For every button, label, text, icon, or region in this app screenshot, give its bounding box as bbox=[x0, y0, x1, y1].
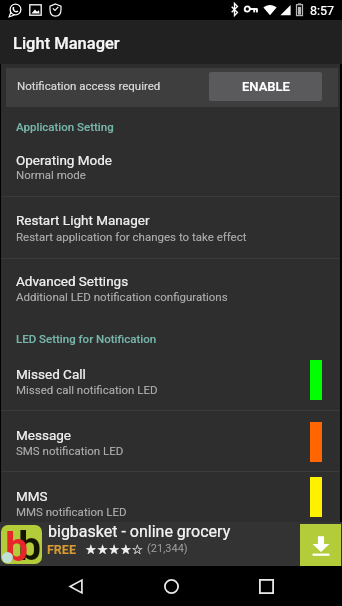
staticText: b bbox=[5, 523, 29, 562]
staticText: Light Manager bbox=[13, 34, 120, 53]
staticText: Additional LED notification configuratio… bbox=[16, 290, 228, 303]
button[interactable]: Home bbox=[141, 566, 202, 606]
staticText: Restart application for changes to take … bbox=[16, 230, 247, 243]
staticText: Notification access required bbox=[17, 79, 161, 92]
staticText: Operating Mode bbox=[16, 152, 113, 168]
staticText: (21,344) bbox=[147, 542, 188, 555]
button[interactable]: Install bbox=[300, 524, 341, 566]
button[interactable] bbox=[1, 411, 340, 471]
staticText: MMS bbox=[16, 488, 48, 504]
button[interactable]: b bbox=[0, 522, 342, 566]
staticText: Missed call notification LED bbox=[16, 383, 158, 396]
button[interactable] bbox=[1, 259, 340, 320]
button[interactable]: Notification access required bbox=[6, 68, 338, 107]
staticText: MMS notification LED bbox=[16, 505, 127, 518]
staticText: Restart Light Manager bbox=[16, 212, 150, 228]
button[interactable]: ENABLE bbox=[209, 72, 322, 101]
staticText: b bbox=[18, 522, 42, 561]
button[interactable] bbox=[1, 139, 340, 196]
button[interactable] bbox=[1, 472, 340, 522]
button[interactable] bbox=[1, 197, 340, 258]
staticText: Normal mode bbox=[16, 168, 86, 181]
button[interactable]: Back bbox=[45, 566, 106, 606]
staticText: FREE bbox=[47, 542, 76, 557]
staticText: LED Setting for Notification bbox=[16, 332, 157, 345]
staticText: Advanced Settings bbox=[16, 273, 129, 289]
button[interactable]: Recents bbox=[236, 566, 297, 606]
staticText: 8:57 bbox=[310, 3, 335, 18]
staticText: Missed Call bbox=[16, 366, 86, 382]
staticText: Message bbox=[16, 427, 71, 443]
staticText: SMS notification LED bbox=[16, 444, 124, 457]
button[interactable] bbox=[1, 353, 340, 410]
staticText: Application Setting bbox=[16, 120, 114, 133]
staticText: ENABLE bbox=[242, 79, 290, 94]
staticText: bigbasket - online grocery bbox=[48, 522, 231, 541]
staticText: ★★★★☆ bbox=[85, 542, 144, 557]
